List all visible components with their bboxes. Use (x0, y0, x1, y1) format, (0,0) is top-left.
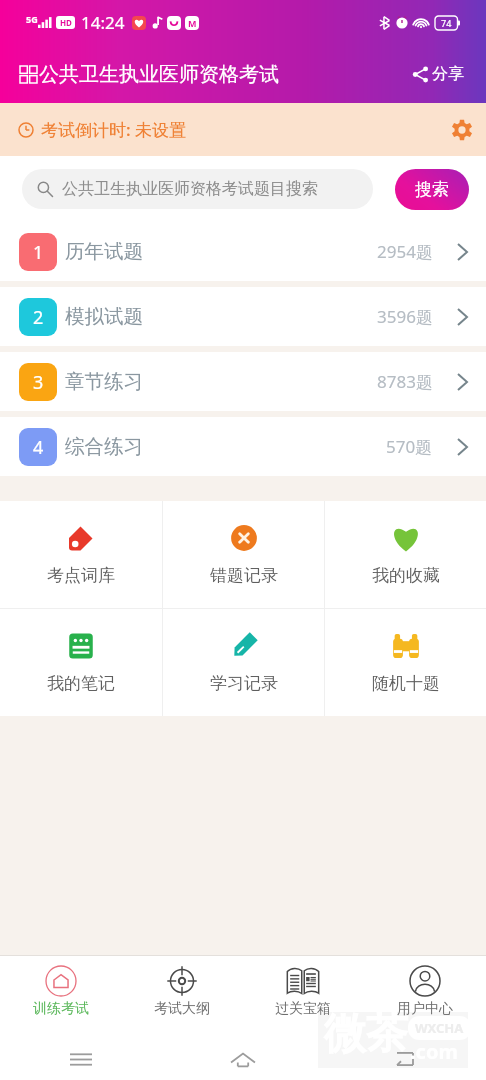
staticText: 5G (26, 13, 38, 25)
staticText: 570题 (386, 435, 433, 458)
staticText: 综合练习 (65, 434, 143, 459)
button[interactable]: 我的笔记 (0, 609, 162, 716)
staticText: 章节练习 (65, 369, 143, 394)
staticText: 3 (33, 370, 44, 395)
staticText: 错题记录 (210, 565, 278, 586)
button[interactable]: 1 (0, 222, 486, 281)
button[interactable]: 分享 (408, 60, 468, 88)
staticText: 1 (33, 240, 44, 265)
staticText: 14:24 (81, 11, 125, 34)
staticText: HD (60, 17, 72, 28)
staticText: 考试倒计时: 未设置 (41, 118, 187, 141)
staticText: 随机十题 (372, 673, 440, 694)
staticText: 74 (441, 17, 452, 29)
button[interactable]: 过关宝箱 (242, 960, 364, 1022)
button[interactable]: 错题记录 (163, 501, 324, 608)
staticText: 4 (33, 435, 44, 460)
button[interactable]: 考点词库 (0, 501, 162, 608)
staticText: 考点词库 (47, 565, 115, 586)
staticText: 微茶 (324, 1008, 408, 1061)
staticText: 8783题 (377, 370, 433, 393)
button[interactable]: 考试倒计时: 未设置 (0, 103, 486, 156)
staticText: 学习记录 (210, 673, 278, 694)
staticText: 搜索 (415, 179, 449, 200)
staticText: M (188, 17, 197, 29)
staticText: 考试大纲 (154, 1000, 210, 1018)
button[interactable]: Home (162, 1038, 324, 1080)
staticText: 3596题 (377, 305, 433, 328)
button[interactable]: 公共卫生执业医师资格考试题目搜索 (22, 169, 373, 209)
button[interactable]: 2 (0, 287, 486, 346)
staticText: WXCHA (415, 1019, 464, 1037)
button[interactable]: 搜索 (395, 169, 469, 210)
staticText: 2 (33, 305, 44, 330)
staticText: 用户中心 (397, 1000, 453, 1018)
staticText: 历年试题 (65, 239, 143, 264)
button[interactable]: 用户中心 (364, 960, 486, 1022)
button[interactable]: 3 (0, 352, 486, 411)
staticText: .com (410, 1038, 458, 1065)
button[interactable]: 训练考试 (0, 960, 121, 1022)
staticText: 2954题 (377, 240, 433, 263)
staticText: 模拟试题 (65, 304, 143, 329)
button[interactable]: 我的收藏 (325, 501, 486, 608)
staticText: 公共卫生执业医师资格考试题目搜索 (62, 179, 318, 199)
staticText: 我的笔记 (47, 673, 115, 694)
staticText: 过关宝箱 (275, 1000, 331, 1018)
staticText: 我的收藏 (372, 565, 440, 586)
button[interactable]: 学习记录 (163, 609, 324, 716)
button[interactable]: 考试大纲 (121, 960, 242, 1022)
staticText: 公共卫生执业医师资格考试 (39, 62, 279, 87)
button[interactable]: Back (324, 1038, 486, 1080)
button[interactable]: 设置 (449, 117, 475, 143)
button[interactable]: 4 (0, 417, 486, 476)
button[interactable]: Recents (0, 1038, 162, 1080)
button[interactable]: 随机十题 (325, 609, 486, 716)
staticText: 分享 (432, 64, 464, 84)
staticText: 训练考试 (33, 1000, 89, 1018)
